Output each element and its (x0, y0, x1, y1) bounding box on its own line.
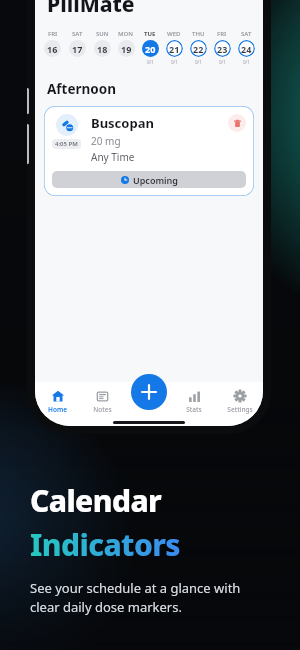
staticText: Settings (227, 405, 253, 414)
staticText: MON (118, 30, 134, 38)
staticText: 0/1 (219, 59, 226, 65)
staticText: TUE (144, 30, 156, 38)
staticText: 16 (47, 43, 58, 55)
staticText: Stats (186, 405, 202, 414)
staticText: Any Time (91, 150, 135, 164)
staticText: Home (48, 405, 67, 414)
staticText: 20 mg (91, 134, 121, 148)
staticText: 18 (97, 43, 108, 55)
button[interactable]: WED (162, 29, 186, 66)
button[interactable]: Delete (228, 114, 246, 132)
button[interactable]: Settings (217, 387, 263, 416)
staticText: 0/1 (195, 59, 202, 65)
staticText: 4:05 PM (55, 140, 78, 148)
staticText: SUN (96, 30, 109, 38)
staticText: 23 (217, 43, 228, 55)
staticText: 0/1 (243, 59, 250, 65)
button[interactable]: 4:05 PM (44, 106, 254, 196)
staticText: See your schedule at a glance with clear… (30, 579, 241, 616)
staticText: Afternoon (47, 80, 116, 98)
staticText: Indicators (30, 524, 180, 565)
staticText: FRI (217, 30, 227, 38)
staticText: SAT (241, 30, 252, 38)
staticText: Buscopan (91, 114, 154, 132)
staticText: 0/1 (171, 59, 178, 65)
button[interactable]: MON (114, 29, 138, 66)
button[interactable]: SAT (65, 29, 90, 66)
staticText: 24 (241, 43, 252, 55)
staticText: FRI (48, 30, 58, 38)
staticText: 22 (193, 43, 204, 55)
button[interactable]: Stats (171, 388, 217, 416)
button[interactable]: SAT (234, 29, 258, 66)
staticText: 19 (121, 43, 132, 55)
button[interactable]: FRI (210, 29, 234, 66)
staticText: 21 (169, 43, 180, 55)
button[interactable]: SUN (90, 29, 114, 66)
button[interactable]: FRI (40, 29, 65, 66)
button[interactable]: Home (35, 387, 80, 416)
staticText: Calendar (30, 480, 162, 521)
staticText: Notes (93, 405, 112, 414)
staticText: 17 (72, 43, 83, 55)
button[interactable]: TUE (138, 29, 162, 66)
button[interactable]: Upcoming (52, 171, 246, 188)
staticText: PillMate (47, 0, 135, 19)
staticText: 0/1 (147, 59, 154, 65)
staticText: WED (167, 30, 181, 38)
button[interactable]: Add medication (131, 374, 167, 410)
staticText: THU (192, 30, 205, 38)
button[interactable]: Notes (80, 388, 125, 416)
staticText: Upcoming (133, 174, 178, 186)
button[interactable]: THU (186, 29, 210, 66)
staticText: 20 (145, 43, 156, 55)
staticText: SAT (72, 30, 83, 38)
